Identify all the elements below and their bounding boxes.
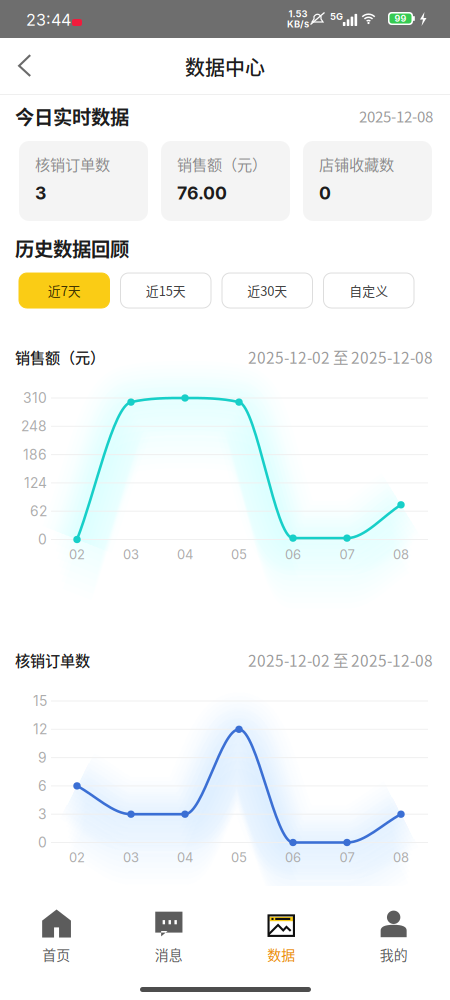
staticText: 310 bbox=[23, 390, 47, 406]
button[interactable]: 首页 bbox=[0, 886, 112, 974]
button[interactable]: 自定义 bbox=[323, 273, 414, 308]
staticText: 06 bbox=[285, 850, 301, 865]
staticText: 05 bbox=[231, 547, 247, 562]
staticText: 05 bbox=[231, 850, 247, 865]
button[interactable]: 消息 bbox=[112, 886, 225, 974]
staticText: 0 bbox=[38, 531, 47, 548]
button[interactable]: 近7天 bbox=[19, 273, 109, 308]
staticText: 02 bbox=[69, 547, 85, 562]
staticText: 2025-12-08 bbox=[359, 105, 433, 127]
staticText: 我的 bbox=[380, 944, 408, 964]
staticText: 9 bbox=[38, 749, 47, 766]
staticText: 5G bbox=[330, 11, 343, 22]
staticText: 03 bbox=[123, 547, 139, 562]
staticText: 首页 bbox=[42, 944, 70, 964]
button[interactable]: Back bbox=[0, 38, 55, 95]
staticText: 近30天 bbox=[247, 281, 287, 300]
button[interactable]: 我的 bbox=[337, 886, 450, 974]
staticText: 12 bbox=[33, 721, 47, 738]
staticText: 销售额（元） bbox=[15, 346, 105, 368]
staticText: 0 bbox=[319, 182, 331, 204]
staticText: 核销订单数 bbox=[15, 649, 90, 671]
staticText: 04 bbox=[177, 850, 193, 865]
staticText: 186 bbox=[23, 446, 47, 463]
staticText: 07 bbox=[339, 850, 354, 865]
staticText: 76.00 bbox=[177, 182, 227, 204]
staticText: 1.53 bbox=[288, 8, 307, 19]
staticText: 历史数据回顾 bbox=[15, 234, 129, 262]
staticText: 08 bbox=[393, 850, 409, 865]
staticText: 03 bbox=[123, 850, 139, 865]
staticText: 23:44 bbox=[26, 10, 71, 30]
staticText: 店铺收藏数 bbox=[319, 153, 394, 175]
staticText: 0 bbox=[38, 834, 47, 851]
staticText: 3 bbox=[35, 182, 46, 204]
staticText: 销售额（元） bbox=[177, 153, 267, 175]
staticText: 2025-12-02 至 2025-12-08 bbox=[248, 346, 433, 368]
staticText: 02 bbox=[69, 850, 85, 865]
staticText: 消息 bbox=[155, 944, 183, 964]
staticText: 近15天 bbox=[146, 281, 186, 300]
staticText: 3 bbox=[38, 806, 47, 822]
staticText: 自定义 bbox=[349, 281, 388, 300]
staticText: 248 bbox=[21, 418, 47, 435]
staticText: 15 bbox=[33, 693, 47, 709]
staticText: 06 bbox=[285, 547, 301, 562]
staticText: 99 bbox=[394, 13, 406, 24]
staticText: 核销订单数 bbox=[35, 153, 110, 175]
staticText: 2025-12-02 至 2025-12-08 bbox=[248, 649, 433, 671]
staticText: KB/s bbox=[287, 18, 309, 30]
staticText: 近7天 bbox=[48, 281, 81, 300]
staticText: 数据 bbox=[267, 944, 295, 964]
button[interactable]: 近30天 bbox=[222, 273, 312, 308]
staticText: 04 bbox=[177, 547, 193, 562]
staticText: 数据中心 bbox=[185, 52, 265, 81]
staticText: 124 bbox=[24, 474, 47, 491]
staticText: 6 bbox=[38, 777, 47, 794]
staticText: 62 bbox=[30, 503, 47, 519]
staticText: 07 bbox=[339, 547, 354, 562]
button[interactable]: 近15天 bbox=[120, 273, 211, 308]
staticText: 08 bbox=[393, 547, 409, 562]
staticText: 今日实时数据 bbox=[15, 102, 129, 130]
button[interactable]: 数据 bbox=[225, 886, 337, 974]
